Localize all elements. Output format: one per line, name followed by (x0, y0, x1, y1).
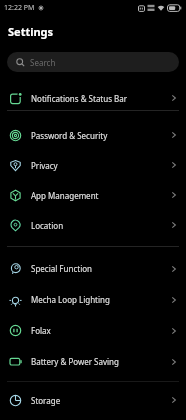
staticText: Special Function (31, 263, 92, 274)
staticText: Folax (31, 325, 51, 336)
staticText: Storage (31, 395, 61, 406)
staticText: Mecha Loop Lighting (31, 294, 110, 305)
button[interactable]: Mecha Loop Lighting (0, 284, 186, 315)
staticText: Settings (8, 24, 54, 39)
staticText: 12:22 PM (4, 3, 35, 13)
button[interactable]: Search (7, 52, 179, 72)
button[interactable]: Location (0, 210, 186, 240)
button[interactable]: Special Function (0, 253, 186, 284)
button[interactable]: Battery & Power Saving (0, 346, 186, 377)
staticText: Privacy (31, 160, 58, 171)
staticText: Password & Security (31, 130, 108, 141)
button[interactable]: Notifications & Status Bar (0, 86, 186, 110)
button[interactable]: Privacy (0, 150, 186, 180)
button[interactable]: Storage (0, 385, 186, 415)
button[interactable]: App Management (0, 180, 186, 210)
staticText: Search (30, 57, 56, 68)
staticText: App Management (31, 190, 99, 201)
button[interactable]: Folax (0, 315, 186, 346)
staticText: Battery & Power Saving (31, 356, 119, 367)
button[interactable]: Password & Security (0, 120, 186, 150)
staticText: Location (31, 220, 64, 231)
staticText: Notifications & Status Bar (31, 93, 128, 104)
